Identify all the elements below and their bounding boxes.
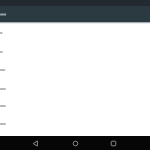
button[interactable] [28, 136, 43, 150]
button[interactable] [0, 80, 150, 98]
button[interactable] [68, 136, 83, 150]
button[interactable] [106, 136, 121, 150]
button[interactable] [0, 97, 150, 115]
button[interactable] [0, 61, 150, 79]
button[interactable] [0, 115, 150, 133]
